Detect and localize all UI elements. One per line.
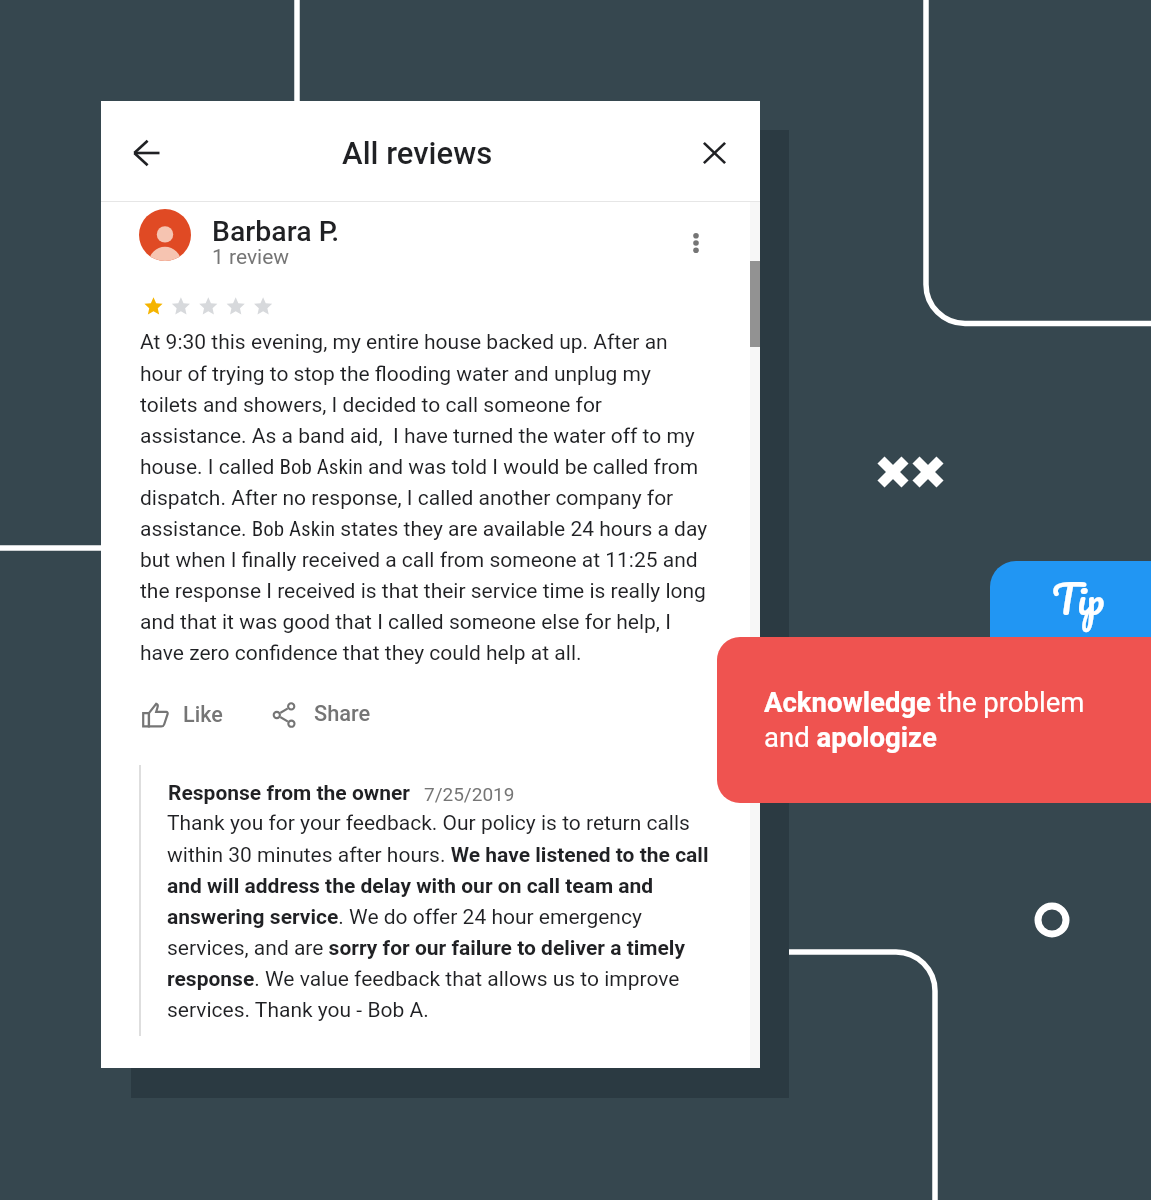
- staticText: Barbara P.: [212, 215, 340, 248]
- staticText: 7/25/2019: [424, 783, 515, 805]
- button[interactable]: Acknowledge the problem and apologize: [717, 637, 1151, 803]
- button[interactable]: Share: [262, 693, 363, 737]
- staticText: Thank you for your feedback. Our policy …: [167, 811, 709, 1022]
- staticText: At 9:30 this evening, my entire house ba…: [140, 330, 708, 665]
- staticText: All reviews: [342, 135, 493, 171]
- staticText: Share: [314, 701, 371, 727]
- button[interactable]: Like: [133, 693, 217, 737]
- button[interactable]: Close: [686, 125, 742, 181]
- staticText: Tip: [1052, 565, 1105, 632]
- button[interactable]: More options: [673, 220, 719, 266]
- staticText: 1 review: [212, 245, 290, 270]
- button[interactable]: Tip: [990, 561, 1151, 637]
- staticText: Acknowledge the problem and apologize: [764, 686, 1085, 754]
- staticText: Like: [183, 702, 223, 727]
- button[interactable]: Back: [118, 125, 174, 181]
- staticText: Response from the owner: [168, 781, 411, 806]
